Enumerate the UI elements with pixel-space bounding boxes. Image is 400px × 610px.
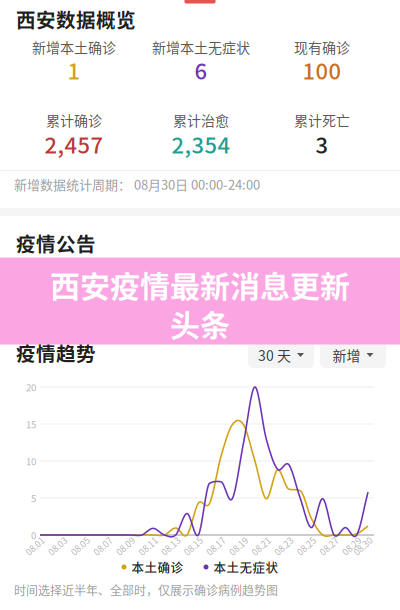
staticText: 10 <box>26 454 36 468</box>
staticText: 头条 <box>170 302 230 345</box>
staticText: 08.23 <box>273 540 295 552</box>
staticText: 5 <box>31 491 36 505</box>
staticText: 08.01 <box>24 540 46 552</box>
staticText: 累计治愈 <box>173 110 229 130</box>
staticText: 本土无症状 <box>213 558 278 576</box>
staticText: 08.07 <box>92 540 114 552</box>
staticText: 08.09 <box>114 540 136 552</box>
staticText: 08.05 <box>69 540 91 552</box>
staticText: 累计死亡 <box>294 110 350 130</box>
staticText: 西安疫情最新消息更新 <box>50 263 350 306</box>
staticText: 08.21 <box>250 540 272 552</box>
staticText: 6 <box>194 54 207 86</box>
staticText: 08.27 <box>318 540 340 552</box>
staticText: 疫情趋势 <box>16 338 96 367</box>
staticText: 新增数据统计周期： 08月30日 00:00-24:00 <box>14 175 260 193</box>
staticText: 现有确诊 <box>294 37 350 57</box>
staticText: 08.25 <box>295 540 317 552</box>
staticText: 西安数据概览 <box>16 5 136 33</box>
staticText: 累计确诊 <box>46 110 102 130</box>
staticText: 西安市新增本土确诊病例1例，新增本土无症状感染者6例 <box>35 264 373 304</box>
staticText: 2,354 <box>171 128 230 160</box>
staticText: 100 <box>302 54 341 86</box>
staticText: 新增 <box>332 345 360 365</box>
staticText: 30 天 <box>258 345 291 365</box>
staticText: 15 <box>26 417 36 431</box>
staticText: 3 <box>315 128 328 160</box>
staticText: 新增本土无症状 <box>152 37 250 57</box>
staticText: 疫情公告 <box>16 229 96 257</box>
staticText: 08.29 <box>341 540 363 552</box>
staticText: 1 <box>67 54 80 86</box>
staticText: 08.19 <box>228 540 250 552</box>
staticText: 本土确诊 <box>131 558 183 576</box>
staticText: 08.03 <box>47 540 69 552</box>
staticText: 0 <box>31 528 36 542</box>
staticText: 20 <box>26 380 36 394</box>
staticText: 08.13 <box>160 540 182 552</box>
staticText: 08.17 <box>205 540 227 552</box>
button[interactable]: 新增 <box>320 342 386 368</box>
staticText: 时间选择近半年、全部时，仅展示确诊病例趋势图 <box>14 581 278 599</box>
staticText: 08.11 <box>137 540 159 552</box>
button[interactable]: 30 天 <box>248 342 314 368</box>
staticText: 新增本土确诊 <box>32 37 116 57</box>
staticText: 2,457 <box>44 128 103 160</box>
staticText: 08.15 <box>182 540 204 552</box>
staticText: 08.30 <box>352 540 374 552</box>
